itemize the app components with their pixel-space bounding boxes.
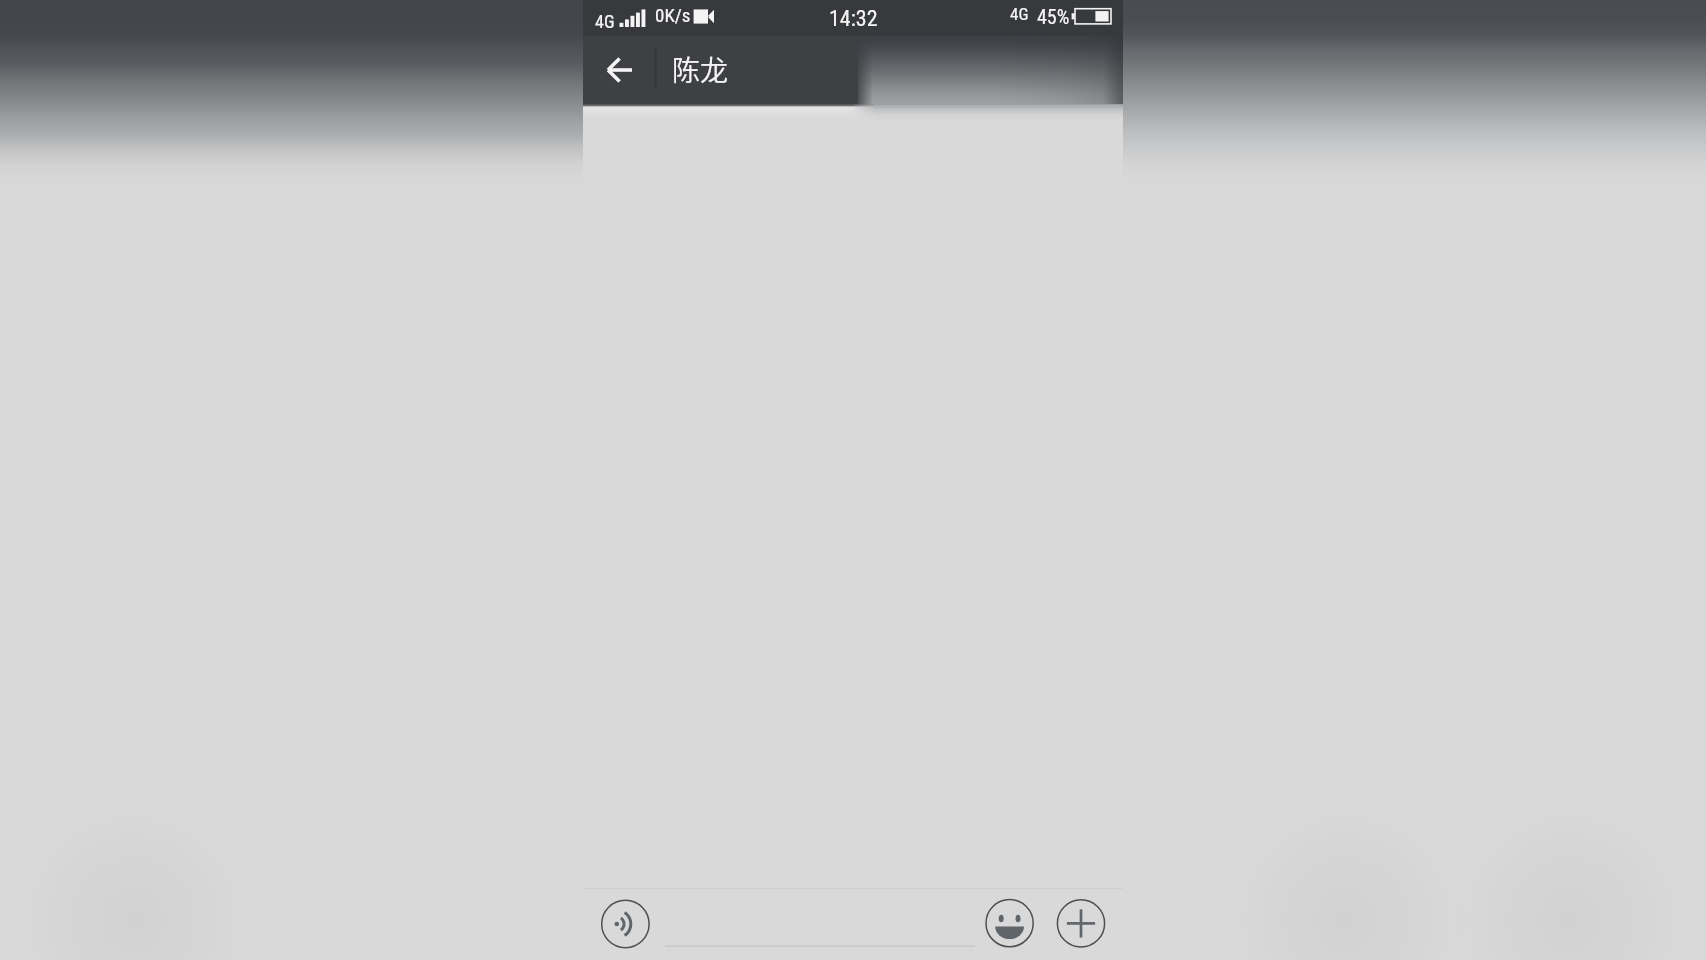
staticText: 4G	[1010, 4, 1029, 24]
staticText: 4G	[595, 11, 615, 32]
staticText: 0K/s	[655, 4, 691, 26]
button[interactable]: More options	[1052, 894, 1109, 951]
button[interactable]: Emoji	[981, 894, 1038, 951]
button[interactable]: Back	[593, 46, 647, 94]
staticText: 14:32	[829, 6, 878, 32]
staticText: 陈龙	[672, 49, 729, 90]
button[interactable]: Voice message	[597, 894, 654, 951]
button[interactable]: 陈龙	[647, 46, 827, 94]
staticText: 45%	[1037, 5, 1070, 28]
